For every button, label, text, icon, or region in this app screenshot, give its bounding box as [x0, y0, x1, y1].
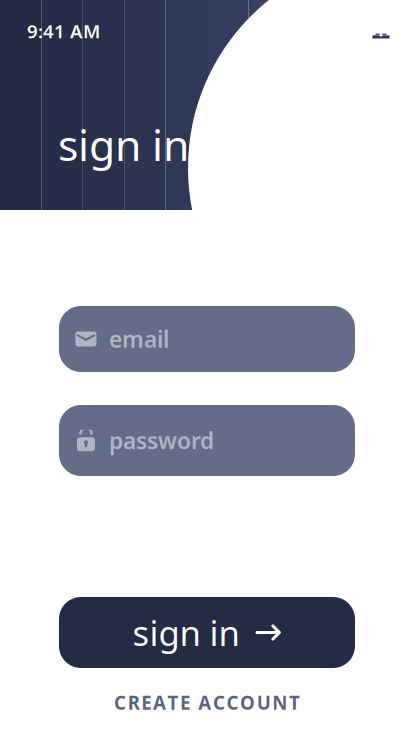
- button[interactable]: C: [100, 684, 314, 721]
- staticText: N: [272, 690, 287, 715]
- staticText: sign in: [132, 609, 239, 655]
- staticText: O: [240, 690, 255, 715]
- staticText: 9:41 AM: [27, 19, 100, 43]
- button[interactable]: email: [59, 306, 355, 372]
- staticText: C: [213, 690, 225, 715]
- staticText: E: [180, 690, 190, 715]
- staticText: A: [153, 690, 166, 715]
- staticText: email: [109, 324, 169, 354]
- staticText: U: [257, 690, 271, 715]
- staticText: T: [167, 690, 178, 715]
- staticText: T: [289, 690, 300, 715]
- staticText: sign in: [58, 116, 189, 173]
- button[interactable]: sign in: [59, 597, 355, 668]
- staticText: password: [109, 425, 214, 455]
- staticText: C: [114, 690, 126, 715]
- staticText: E: [141, 690, 151, 715]
- staticText: A: [198, 690, 211, 715]
- button[interactable]: password: [59, 405, 355, 476]
- staticText: C: [226, 690, 238, 715]
- staticText: R: [128, 690, 140, 715]
